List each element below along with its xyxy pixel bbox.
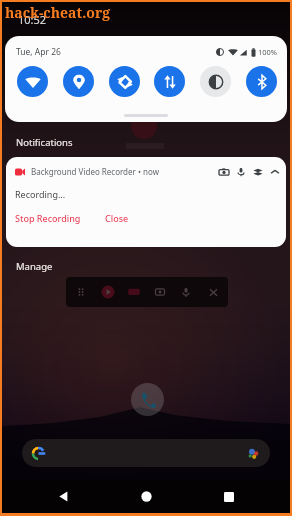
- button[interactable]: Dark theme: [200, 66, 231, 97]
- button[interactable]: Close: [202, 281, 224, 303]
- button[interactable]: Move: [70, 281, 92, 303]
- staticText: Stop Recording: [15, 212, 81, 224]
- button[interactable]: Record: [97, 281, 119, 303]
- button[interactable]: Stop Recording: [15, 212, 81, 224]
- button[interactable]: Microphone: [175, 281, 197, 303]
- staticText: hack-cheat.org: [5, 3, 111, 22]
- staticText: Background Video Recorder • now: [31, 166, 159, 177]
- button[interactable]: [22, 439, 270, 467]
- button[interactable]: Microphone: [236, 167, 246, 177]
- staticText: 10:52: [18, 12, 47, 27]
- button[interactable]: Layers: [253, 167, 263, 177]
- button[interactable]: Wi-Fi: [17, 66, 48, 97]
- button[interactable]: Background Video Recorder • now: [6, 157, 286, 247]
- button[interactable]: Stop: [123, 281, 145, 303]
- staticText: 100%: [258, 47, 278, 57]
- staticText: Tue, Apr 26: [16, 46, 61, 58]
- staticText: Recording...: [15, 188, 66, 200]
- button[interactable]: Auto-rotate: [109, 66, 140, 97]
- button[interactable]: Home: [129, 480, 163, 513]
- button[interactable]: Manage: [16, 260, 53, 273]
- button[interactable]: Recent apps: [212, 480, 246, 513]
- button[interactable]: Screenshot: [219, 167, 229, 177]
- button[interactable]: Bluetooth: [246, 66, 277, 97]
- staticText: Close: [105, 212, 129, 224]
- button[interactable]: Close: [105, 212, 129, 224]
- button[interactable]: Phone: [131, 383, 164, 416]
- button[interactable]: Mobile data: [154, 66, 185, 97]
- button[interactable]: Switch camera: [149, 281, 171, 303]
- button[interactable]: Collapse: [270, 167, 280, 177]
- button[interactable]: Back: [46, 480, 80, 513]
- button[interactable]: Location: [63, 66, 94, 97]
- button[interactable]: Notifications: [16, 136, 73, 149]
